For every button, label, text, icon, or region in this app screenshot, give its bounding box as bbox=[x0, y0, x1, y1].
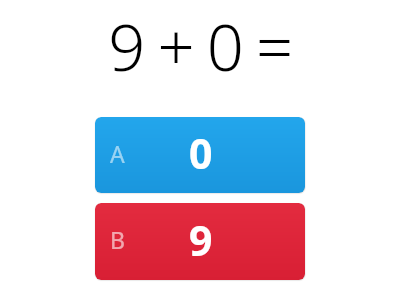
other: Quiz question screen bbox=[0, 0, 400, 300]
staticText: 9 + 0 = bbox=[108, 2, 291, 91]
staticText: 9 bbox=[189, 212, 213, 268]
button[interactable]: B bbox=[95, 203, 305, 280]
staticText: 0 bbox=[189, 125, 213, 181]
button[interactable]: A bbox=[95, 117, 305, 193]
staticText: B bbox=[110, 224, 125, 255]
staticText: A bbox=[110, 138, 125, 169]
